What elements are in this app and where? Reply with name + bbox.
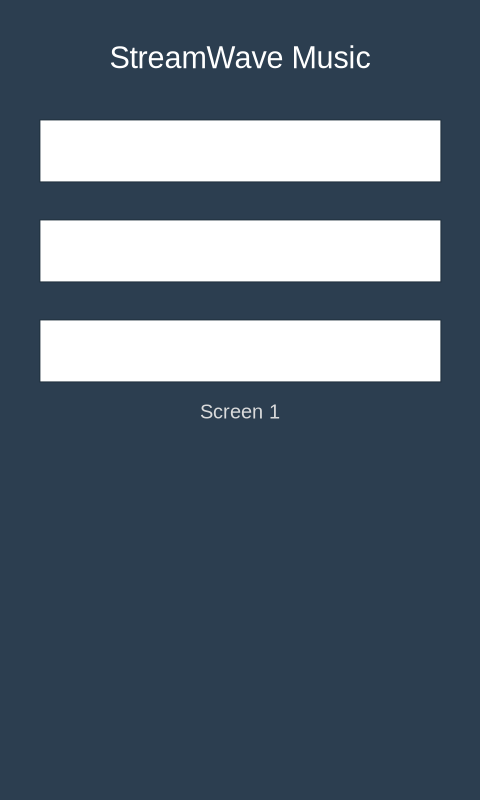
staticText: Screen 1 xyxy=(200,400,280,423)
button[interactable]: Item 2 xyxy=(39,219,441,282)
button[interactable]: Item 1 xyxy=(39,119,441,182)
button[interactable]: Item 3 xyxy=(39,319,441,382)
staticText: StreamWave Music xyxy=(109,40,370,75)
